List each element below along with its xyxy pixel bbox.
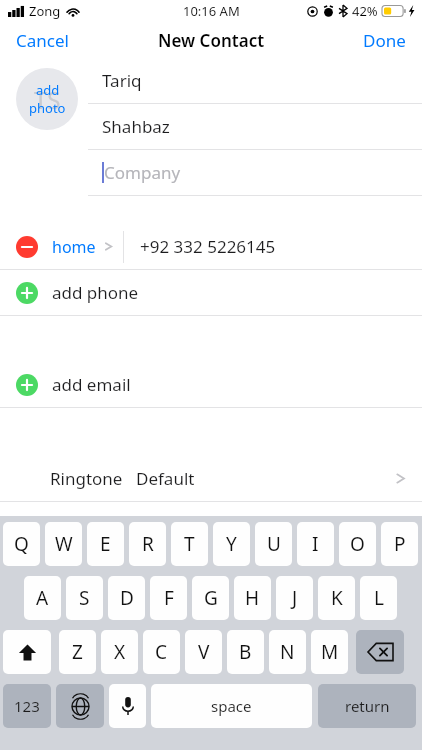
staticText: Q [14, 531, 29, 557]
button[interactable]: Add [0, 270, 422, 315]
button[interactable]: S [66, 576, 103, 620]
staticText: 10:16 AM [183, 2, 240, 20]
other: Add [16, 282, 38, 304]
staticText: B [239, 639, 252, 665]
button[interactable]: return [318, 684, 416, 728]
button[interactable]: T [171, 522, 208, 566]
button[interactable]: X [101, 630, 138, 674]
button[interactable]: J [276, 576, 313, 620]
staticText: A [36, 585, 49, 611]
staticText: add [36, 81, 60, 99]
button[interactable]: I [297, 522, 334, 566]
button[interactable]: Shift [3, 630, 51, 674]
staticText: New Contact [158, 29, 265, 52]
button[interactable]: G [192, 576, 229, 620]
button[interactable]: Cancel [0, 23, 85, 58]
staticText: 123 [14, 696, 40, 716]
staticText: I [312, 531, 319, 557]
staticText: F [164, 585, 174, 611]
button[interactable]: Dictation [109, 684, 146, 728]
button[interactable]: C [143, 630, 180, 674]
staticText: T [184, 531, 195, 557]
button[interactable]: F [150, 576, 187, 620]
button[interactable]: space [151, 684, 312, 728]
button[interactable]: Backspace [356, 630, 404, 674]
button[interactable]: Shahbaz [88, 104, 422, 149]
button[interactable]: M [311, 630, 348, 674]
staticText: TS [34, 83, 61, 116]
staticText: R [142, 531, 154, 557]
button[interactable]: R [129, 522, 166, 566]
other: Remove [16, 236, 38, 258]
staticText: Y [226, 531, 237, 557]
button[interactable]: N [269, 630, 306, 674]
staticText: Cancel [16, 29, 69, 52]
button[interactable]: Y [213, 522, 250, 566]
staticText: E [100, 531, 111, 557]
button[interactable]: Switch keyboard [56, 684, 104, 728]
staticText: Shahbaz [102, 115, 170, 138]
button[interactable]: L [360, 576, 397, 620]
button[interactable]: Ringtone [0, 456, 422, 501]
staticText: +92 332 5226145 [140, 235, 276, 258]
button[interactable]: Add [0, 362, 422, 407]
button[interactable]: Add photo [16, 68, 78, 130]
staticText: Z [72, 639, 83, 665]
button[interactable]: H [234, 576, 271, 620]
staticText: L [374, 585, 384, 611]
staticText: home [52, 236, 96, 258]
staticText: K [331, 585, 343, 611]
staticText: D [120, 585, 134, 611]
staticText: O [350, 531, 365, 557]
staticText: M [321, 639, 339, 665]
staticText: Ringtone [50, 467, 123, 490]
staticText: S [79, 585, 90, 611]
button[interactable]: E [87, 522, 124, 566]
button[interactable]: W [45, 522, 82, 566]
staticText: 42% [352, 2, 378, 20]
staticText: return [345, 696, 390, 716]
button[interactable]: Done [347, 23, 422, 58]
button[interactable]: Z [59, 630, 96, 674]
button[interactable]: Remove [0, 224, 422, 269]
staticText: G [204, 585, 218, 611]
staticText: X [114, 639, 126, 665]
button[interactable]: Tariq [88, 58, 422, 103]
staticText: space [211, 696, 252, 716]
staticText: Default [136, 467, 195, 490]
button[interactable]: D [108, 576, 145, 620]
staticText: N [280, 639, 295, 665]
staticText: V [198, 639, 210, 665]
staticText: H [245, 585, 260, 611]
staticText: Done [363, 29, 406, 52]
button[interactable]: K [318, 576, 355, 620]
staticText: add email [52, 373, 131, 396]
staticText: U [267, 531, 281, 557]
staticText: Company [104, 161, 181, 184]
staticText: add phone [52, 281, 139, 304]
staticText: P [394, 531, 406, 557]
button[interactable]: A [24, 576, 61, 620]
other: Add [16, 374, 38, 396]
staticText: W [55, 531, 73, 557]
staticText: J [292, 585, 298, 611]
staticText: Zong [29, 2, 61, 20]
button[interactable]: Company [88, 150, 422, 195]
button[interactable]: Q [3, 522, 40, 566]
staticText: photo [29, 99, 66, 117]
button[interactable]: V [185, 630, 222, 674]
staticText: C [155, 639, 168, 665]
staticText: Tariq [102, 69, 142, 92]
button[interactable]: P [381, 522, 418, 566]
button[interactable]: B [227, 630, 264, 674]
button[interactable]: 123 [3, 684, 51, 728]
button[interactable]: O [339, 522, 376, 566]
button[interactable]: U [255, 522, 292, 566]
